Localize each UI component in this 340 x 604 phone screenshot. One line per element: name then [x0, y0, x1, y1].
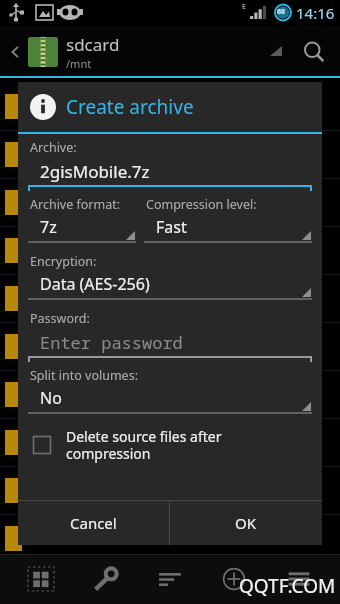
- button[interactable]: Navigate up: [4, 40, 28, 64]
- button[interactable]: 2gisMobile.7z: [28, 157, 312, 191]
- staticText: No: [40, 387, 62, 409]
- button[interactable]: Search: [294, 32, 334, 72]
- staticText: 68: [277, 7, 286, 17]
- staticText: QQTF.COM: [239, 573, 336, 599]
- button[interactable]: Menu: [276, 556, 322, 602]
- staticText: Encryption:: [30, 253, 97, 270]
- staticText: Cancel: [70, 513, 117, 533]
- button[interactable]: Delete source files after compression: [28, 427, 312, 463]
- staticText: 14:16: [296, 3, 335, 23]
- button[interactable]: No: [28, 385, 312, 419]
- button[interactable]: Apps: [18, 556, 64, 602]
- staticText: Archive:: [30, 139, 77, 156]
- staticText: 7z: [40, 216, 57, 238]
- button[interactable]: Data (AES-256): [28, 271, 312, 305]
- button[interactable]: Sort: [268, 42, 288, 62]
- staticText: Password:: [30, 310, 90, 327]
- staticText: Fast: [156, 216, 187, 238]
- staticText: 2gisMobile.7z: [40, 160, 150, 183]
- button[interactable]: Add: [211, 556, 257, 602]
- button[interactable]: Sort: [147, 556, 193, 602]
- staticText: OK: [235, 513, 257, 533]
- button[interactable]: Fast: [144, 214, 312, 248]
- staticText: Split into volumes:: [30, 367, 138, 384]
- button[interactable]: OK: [170, 501, 322, 545]
- staticText: sdcard: [66, 33, 120, 56]
- staticText: Data (AES-256): [40, 273, 150, 295]
- staticText: Enter password: [40, 331, 183, 354]
- staticText: E: [242, 2, 246, 12]
- staticText: Delete source files after compression: [66, 427, 308, 463]
- button[interactable]: Tools: [83, 556, 129, 602]
- staticText: /mnt: [66, 56, 92, 71]
- staticText: Archive format:: [30, 196, 121, 213]
- button[interactable]: Cancel: [18, 501, 169, 545]
- staticText: Create archive: [66, 94, 194, 120]
- staticText: Compression level:: [146, 196, 257, 213]
- button[interactable]: 7z: [28, 214, 136, 248]
- button[interactable]: Enter password: [28, 328, 312, 362]
